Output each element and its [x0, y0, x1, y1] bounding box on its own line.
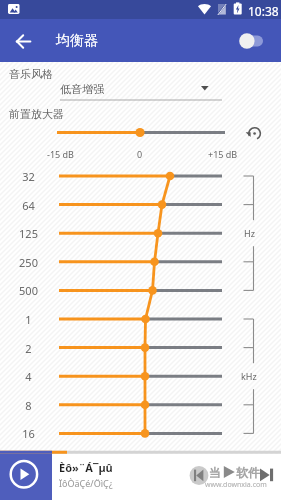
staticText: ÏôÒäÇé/ÖìÇ¿ — [59, 477, 113, 489]
staticText: 250 — [19, 255, 38, 270]
staticText: Hz — [244, 227, 255, 239]
staticText: 软件 — [236, 465, 260, 480]
staticText: 8 — [25, 398, 32, 413]
button[interactable]: Enable equalizer — [236, 28, 269, 54]
button[interactable]: Play — [0, 454, 52, 500]
button[interactable]: Previous — [186, 462, 212, 488]
staticText: 500 — [19, 283, 38, 298]
staticText: -15 dB — [47, 148, 74, 160]
staticText: 0 — [137, 148, 143, 160]
staticText: kHz — [241, 370, 257, 382]
staticText: 10:38 — [248, 3, 279, 19]
staticText: www.downxia.com — [205, 480, 267, 490]
staticText: 音乐风格 — [9, 67, 53, 81]
staticText: 4 — [25, 369, 32, 384]
button[interactable]: Next — [255, 463, 279, 487]
button[interactable]: Back — [9, 27, 37, 55]
staticText: 64 — [22, 198, 35, 213]
staticText: 16 — [22, 426, 35, 441]
staticText: 2 — [25, 341, 32, 356]
staticText: Èô»¨Á¯µû — [59, 460, 113, 475]
staticText: 前置放大器 — [9, 107, 64, 121]
staticText: 1 — [25, 312, 32, 327]
staticText: 125 — [19, 226, 38, 241]
staticText: +15 dB — [208, 148, 238, 160]
staticText: 低音增强 — [60, 82, 104, 96]
staticText: 当 — [209, 465, 221, 480]
button[interactable]: 低音增强 — [60, 82, 222, 99]
staticText: 32 — [22, 169, 35, 184]
button[interactable]: Reset — [241, 120, 266, 145]
staticText: 均衡器 — [56, 32, 98, 50]
